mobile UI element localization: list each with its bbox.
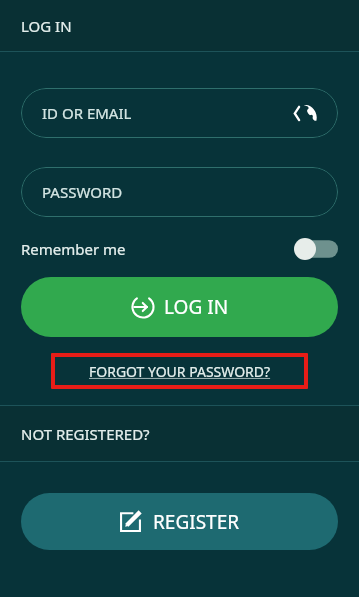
button[interactable]: Remember me	[21, 234, 338, 264]
button[interactable]: REGISTER	[21, 493, 338, 550]
staticText: NOT REGISTERED?	[21, 424, 150, 444]
staticText: REGISTER	[153, 509, 240, 535]
staticText: LOG IN	[164, 294, 229, 320]
staticText: Remember me	[21, 239, 126, 259]
button[interactable]: LOG IN	[21, 277, 338, 337]
staticText: LOG IN	[21, 16, 72, 36]
staticText: FORGOT YOUR PASSWORD?	[89, 362, 271, 381]
button[interactable]: Remember me toggle	[294, 238, 338, 260]
staticText: PASSWORD	[42, 182, 123, 202]
button[interactable]: Use phone number	[288, 99, 324, 127]
button[interactable]: PASSWORD	[21, 167, 338, 217]
staticText: ID OR EMAIL	[42, 103, 132, 123]
button[interactable]: ID OR EMAIL	[21, 88, 338, 138]
button[interactable]: FORGOT YOUR PASSWORD?	[51, 353, 308, 389]
